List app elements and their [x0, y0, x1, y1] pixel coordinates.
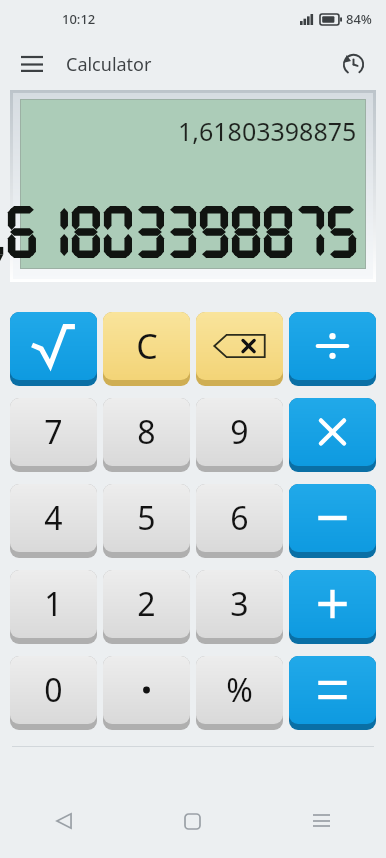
button[interactable]: Equals — [289, 656, 376, 730]
button[interactable]: 8 — [103, 398, 190, 472]
button[interactable]: Backspace — [196, 312, 283, 386]
staticText: C — [136, 323, 158, 369]
button[interactable]: 2 — [103, 570, 190, 644]
button[interactable]: Decimal point — [103, 656, 190, 730]
button[interactable]: 3 — [196, 570, 283, 644]
button[interactable]: Divide — [289, 312, 376, 386]
button[interactable]: Menu — [10, 42, 54, 86]
button[interactable]: 5 — [103, 484, 190, 558]
staticText: 2 — [137, 582, 156, 626]
staticText: 7 — [44, 410, 63, 454]
staticText: 4 — [44, 496, 63, 540]
staticText: 84% — [346, 10, 372, 28]
staticText: 8 — [137, 410, 156, 454]
button[interactable]: Recent apps — [257, 784, 386, 858]
button[interactable]: Home — [128, 784, 257, 858]
button[interactable]: Subtract — [289, 484, 376, 558]
button[interactable]: C — [103, 312, 190, 386]
button[interactable]: 4 — [10, 484, 97, 558]
button[interactable]: Add — [289, 570, 376, 644]
staticText: 10:12 — [62, 10, 96, 28]
staticText: 1 — [44, 582, 63, 626]
button[interactable]: 1 — [10, 570, 97, 644]
button[interactable]: Square root — [10, 312, 97, 386]
button[interactable]: 7 — [10, 398, 97, 472]
button[interactable]: Multiply — [289, 398, 376, 472]
button[interactable]: 0 — [10, 656, 97, 730]
button[interactable]: 9 — [196, 398, 283, 472]
button[interactable]: Back — [0, 784, 128, 858]
staticText: 3 — [230, 582, 249, 626]
button[interactable]: 6 — [196, 484, 283, 558]
staticText: 6 — [230, 496, 249, 540]
staticText: 9 — [230, 410, 249, 454]
button[interactable]: % — [196, 656, 283, 730]
staticText: % — [226, 668, 253, 712]
staticText: 5 — [137, 496, 156, 540]
button[interactable]: History — [330, 41, 376, 87]
staticText: Calculator — [66, 52, 152, 77]
staticText: 0 — [44, 668, 63, 712]
staticText: 1,61803398875 — [178, 114, 357, 148]
